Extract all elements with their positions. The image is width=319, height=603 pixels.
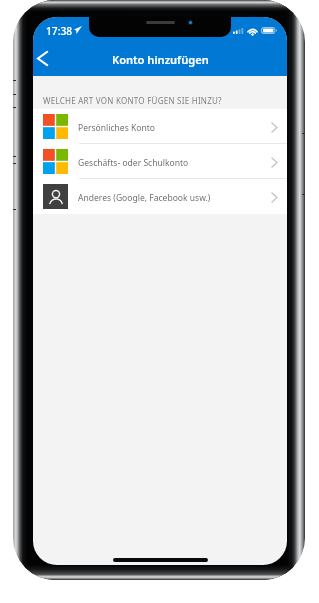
staticText: 17:38 — [46, 24, 73, 38]
button[interactable]: Anderes (Google, Facebook usw.) — [33, 179, 287, 214]
staticText: Konto hinzufügen — [112, 52, 209, 67]
staticText: Geschäfts- oder Schulkonto — [78, 157, 189, 169]
button[interactable]: Persönliches Konto — [33, 109, 287, 144]
staticText: WELCHE ART VON KONTO FÜGEN SIE HINZU? — [43, 95, 222, 106]
staticText: Anderes (Google, Facebook usw.) — [78, 192, 211, 204]
button[interactable]: Zurück — [33, 41, 52, 76]
button[interactable]: Geschäfts- oder Schulkonto — [33, 144, 287, 179]
staticText: Persönliches Konto — [78, 122, 155, 134]
